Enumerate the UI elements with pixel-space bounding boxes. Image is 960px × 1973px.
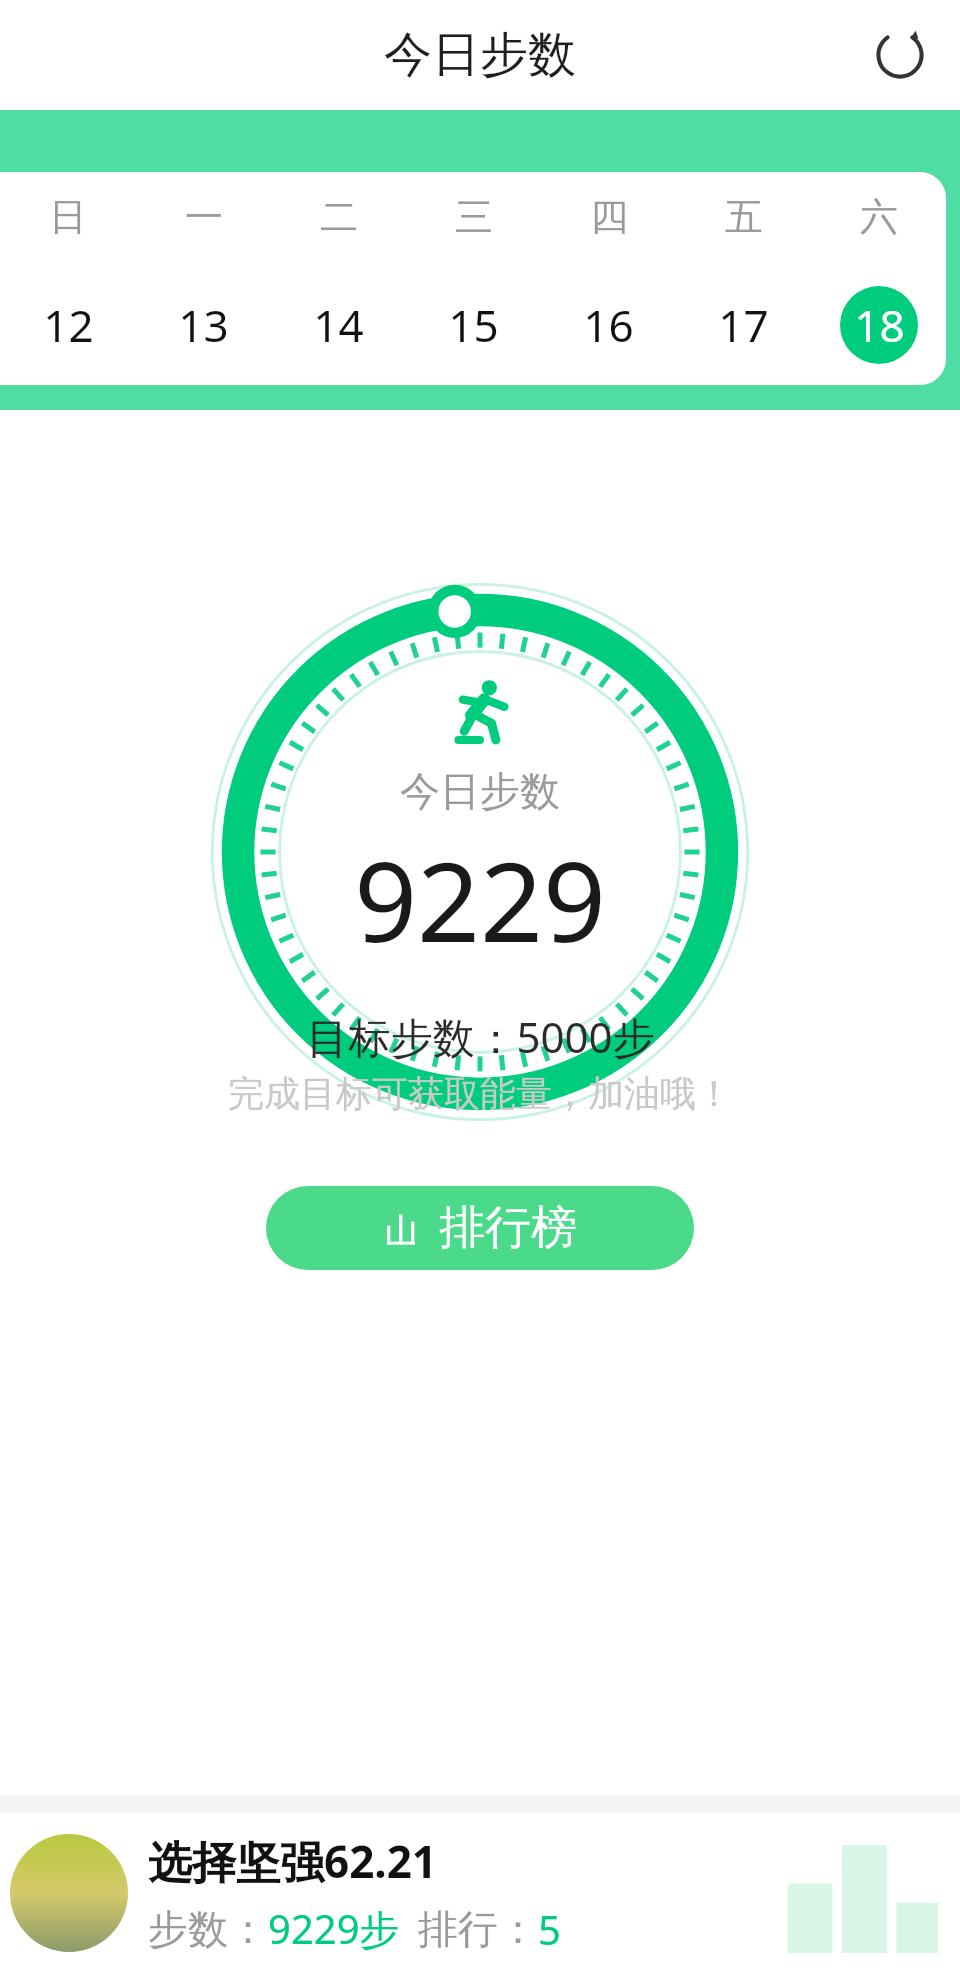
staticText: 14 (313, 295, 364, 355)
button[interactable]: 15 (406, 280, 541, 370)
staticText: 9229 (354, 824, 606, 974)
staticText: 二 (320, 193, 358, 241)
staticText: 9229步 (268, 1901, 400, 1956)
staticText: 六 (860, 193, 898, 241)
staticText: 15 (448, 295, 499, 355)
button[interactable]: 13 (136, 280, 271, 370)
staticText: 16 (583, 295, 634, 355)
staticText: 步数： (148, 1904, 268, 1954)
staticText: 5 (538, 1902, 561, 1956)
button[interactable]: 排行榜 (266, 1186, 694, 1270)
button[interactable]: 18 (811, 280, 946, 370)
staticText: 四 (590, 193, 628, 241)
staticText: 五 (725, 193, 763, 241)
staticText: 日 (49, 193, 87, 241)
staticText: 目标步数：5000步 (306, 1008, 655, 1065)
button[interactable]: 12 (0, 280, 136, 370)
staticText: 12 (43, 295, 94, 355)
staticText: 18 (854, 295, 905, 355)
button[interactable]: 17 (676, 280, 811, 370)
staticText: 今日步数 (400, 766, 560, 816)
staticText: 今日步数 (384, 25, 576, 85)
staticText: 17 (718, 295, 769, 355)
staticText: 完成目标可获取能量，加油哦！ (228, 1071, 732, 1116)
staticText: 选择坚强62.21 (148, 1831, 438, 1891)
staticText: 13 (178, 295, 229, 355)
button[interactable]: 14 (271, 280, 406, 370)
staticText: 排行榜 (439, 1199, 577, 1257)
staticText: 一 (185, 193, 223, 241)
button[interactable]: 16 (541, 280, 676, 370)
staticText: 排行： (418, 1904, 538, 1954)
button[interactable]: Refresh (858, 13, 942, 97)
button[interactable]: 选择坚强62.21 (0, 1813, 960, 1973)
staticText: 三 (455, 193, 493, 241)
